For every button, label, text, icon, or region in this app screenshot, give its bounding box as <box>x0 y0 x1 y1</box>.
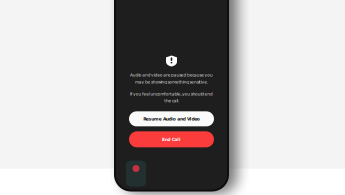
staticText: Audio and video are paused because you <box>130 72 213 77</box>
staticText: If you feel uncomfortable, you should en… <box>130 91 213 96</box>
button[interactable]: End Call <box>129 131 214 147</box>
staticText: Resume Audio and Video <box>143 116 200 121</box>
staticText: the call. <box>164 98 179 103</box>
button[interactable]: Resume Audio and Video <box>129 111 214 126</box>
staticText: End Call <box>162 137 181 142</box>
staticText: may be showing something sensitive. <box>135 79 208 84</box>
